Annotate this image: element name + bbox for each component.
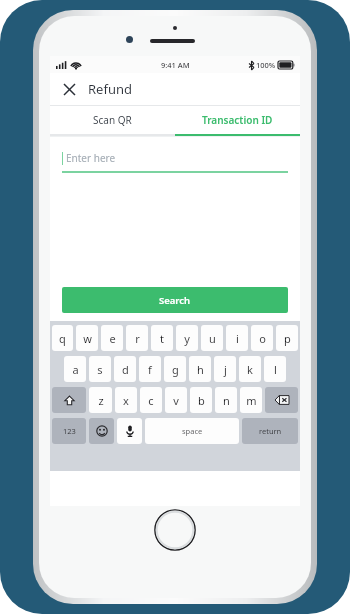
button[interactable]: s <box>89 356 111 382</box>
staticText: u <box>209 331 216 346</box>
button[interactable]: return <box>242 418 298 444</box>
staticText: c <box>148 393 154 408</box>
button[interactable]: v <box>165 387 187 413</box>
staticText: m <box>246 393 257 408</box>
staticText: d <box>122 362 129 377</box>
button[interactable]: Home <box>154 509 196 551</box>
staticText: z <box>98 393 104 408</box>
staticText: 100% <box>256 60 276 70</box>
button[interactable]: b <box>190 387 212 413</box>
staticText: Transaction ID <box>202 113 273 127</box>
staticText: Enter here <box>66 151 116 165</box>
button[interactable]: j <box>214 356 236 382</box>
button[interactable]: t <box>151 325 173 351</box>
staticText: a <box>72 362 79 377</box>
staticText: w <box>83 331 92 346</box>
button[interactable]: Search <box>62 287 288 313</box>
staticText: j <box>224 362 227 377</box>
staticText: q <box>59 331 66 346</box>
staticText: 9:41 AM <box>161 60 190 70</box>
staticText: g <box>172 362 179 377</box>
staticText: 123 <box>63 426 76 436</box>
button[interactable]: m <box>240 387 262 413</box>
button[interactable]: k <box>239 356 261 382</box>
button[interactable]: e <box>101 325 123 351</box>
button[interactable]: p <box>276 325 298 351</box>
button[interactable]: z <box>89 387 112 413</box>
button[interactable]: g <box>164 356 186 382</box>
button[interactable]: a <box>64 356 86 382</box>
button[interactable]: Transaction ID <box>175 106 300 134</box>
button[interactable]: f <box>139 356 161 382</box>
button[interactable]: h <box>189 356 211 382</box>
staticText: l <box>274 362 277 377</box>
staticText: Refund <box>88 80 132 98</box>
button[interactable]: Backspace <box>265 387 298 413</box>
button[interactable]: c <box>140 387 162 413</box>
staticText: f <box>148 362 152 377</box>
staticText: o <box>259 331 266 346</box>
staticText: h <box>197 362 204 377</box>
button[interactable]: u <box>201 325 223 351</box>
staticText: b <box>198 393 205 408</box>
button[interactable]: 123 <box>52 418 86 444</box>
staticText: r <box>135 331 140 346</box>
button[interactable]: d <box>114 356 136 382</box>
staticText: p <box>284 331 291 346</box>
staticText: n <box>223 393 230 408</box>
staticText: s <box>97 362 103 377</box>
button[interactable]: w <box>76 325 98 351</box>
button[interactable]: Scan QR <box>50 106 175 134</box>
button[interactable]: i <box>226 325 248 351</box>
button[interactable]: r <box>126 325 148 351</box>
button[interactable]: x <box>115 387 137 413</box>
button[interactable]: l <box>264 356 286 382</box>
staticText: Search <box>159 294 191 307</box>
staticText: Scan QR <box>93 113 132 127</box>
staticText: y <box>184 331 190 346</box>
staticText: t <box>160 331 164 346</box>
staticText: e <box>109 331 116 346</box>
staticText: k <box>247 362 253 377</box>
staticText: space <box>182 426 203 436</box>
staticText: i <box>236 331 239 346</box>
button[interactable]: space <box>145 418 239 444</box>
button[interactable]: q <box>52 325 73 351</box>
staticText: return <box>259 426 282 436</box>
button[interactable]: o <box>251 325 273 351</box>
button[interactable]: Emoji <box>89 418 114 444</box>
button[interactable]: Shift <box>52 387 86 413</box>
button[interactable]: y <box>176 325 198 351</box>
button[interactable]: n <box>215 387 237 413</box>
button[interactable]: Dictation <box>117 418 142 444</box>
button[interactable]: Close <box>58 78 80 100</box>
staticText: v <box>173 393 179 408</box>
staticText: x <box>123 393 129 408</box>
